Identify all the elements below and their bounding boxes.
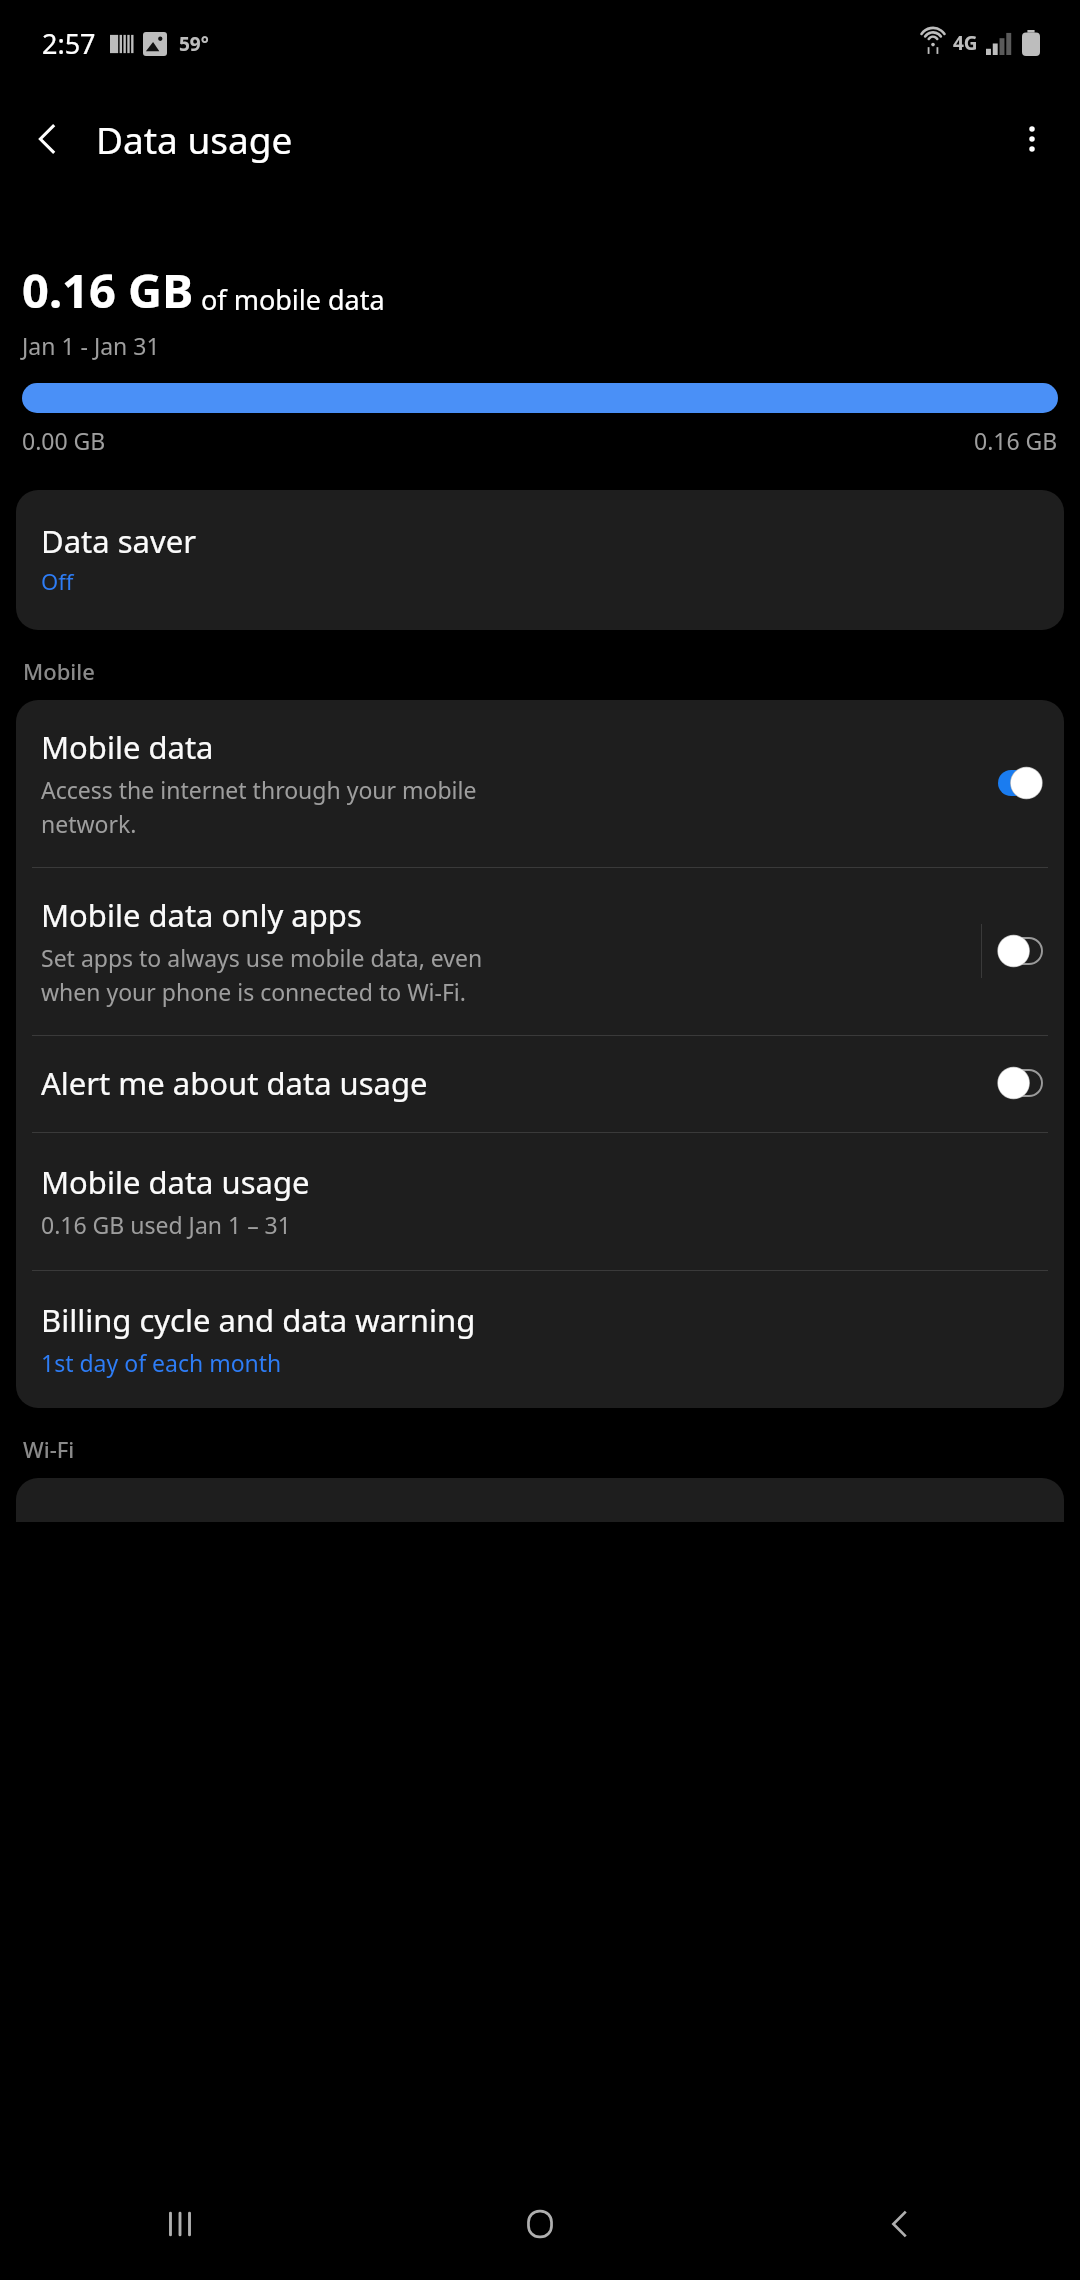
staticText: 0.00 GB	[22, 425, 106, 456]
staticText: Mobile	[23, 656, 95, 686]
staticText: 59°	[179, 31, 209, 57]
staticText: Alert me about data usage	[41, 1062, 428, 1104]
staticText: Mobile data only apps	[41, 894, 362, 936]
staticText: Jan 1 - Jan 31	[22, 330, 160, 361]
button[interactable]: Mobile data	[16, 700, 1064, 867]
button[interactable]: Mobile data only apps	[16, 868, 1064, 1035]
other: Off	[998, 938, 1042, 964]
staticText: of mobile data	[201, 281, 385, 318]
staticText: Access the internet through your mobile …	[41, 774, 477, 839]
staticText: Mobile data	[41, 726, 214, 768]
button[interactable]: Billing cycle and data warning	[16, 1271, 1064, 1408]
button[interactable]: Data saver	[16, 490, 1064, 630]
staticText: Data usage	[96, 114, 293, 164]
button[interactable]: Alert me about data usage	[16, 1036, 1064, 1132]
other: On	[998, 770, 1042, 796]
button[interactable]: Home	[360, 2168, 720, 2280]
staticText: Mobile data usage	[41, 1161, 310, 1203]
other: Off	[998, 1070, 1042, 1096]
staticText: Billing cycle and data warning	[41, 1299, 476, 1341]
staticText: 0.16 GB used Jan 1 – 31	[41, 1209, 291, 1240]
staticText: Set apps to always use mobile data, even…	[41, 942, 483, 1007]
staticText: Wi-Fi	[23, 1434, 75, 1464]
staticText: 0.16 GB	[974, 425, 1058, 456]
staticText: 4G	[953, 30, 978, 56]
staticText: 2:57	[42, 25, 96, 62]
staticText: Data saver	[41, 520, 196, 562]
staticText: Off	[41, 566, 74, 596]
button[interactable]: Mobile data usage	[16, 1133, 1064, 1270]
staticText: 1st day of each month	[41, 1347, 282, 1378]
button[interactable]: Back	[720, 2168, 1080, 2280]
button[interactable]: Back	[0, 91, 96, 187]
staticText: 0.16 GB	[22, 258, 194, 322]
button[interactable]: Recent apps	[0, 2168, 360, 2280]
button[interactable]: More options	[984, 91, 1080, 187]
